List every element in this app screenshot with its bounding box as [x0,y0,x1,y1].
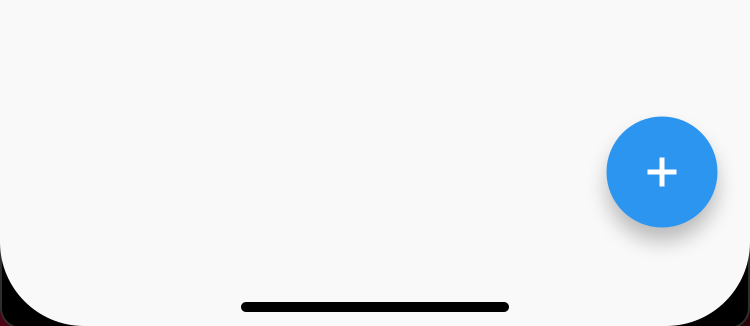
button[interactable]: Add [606,116,717,227]
